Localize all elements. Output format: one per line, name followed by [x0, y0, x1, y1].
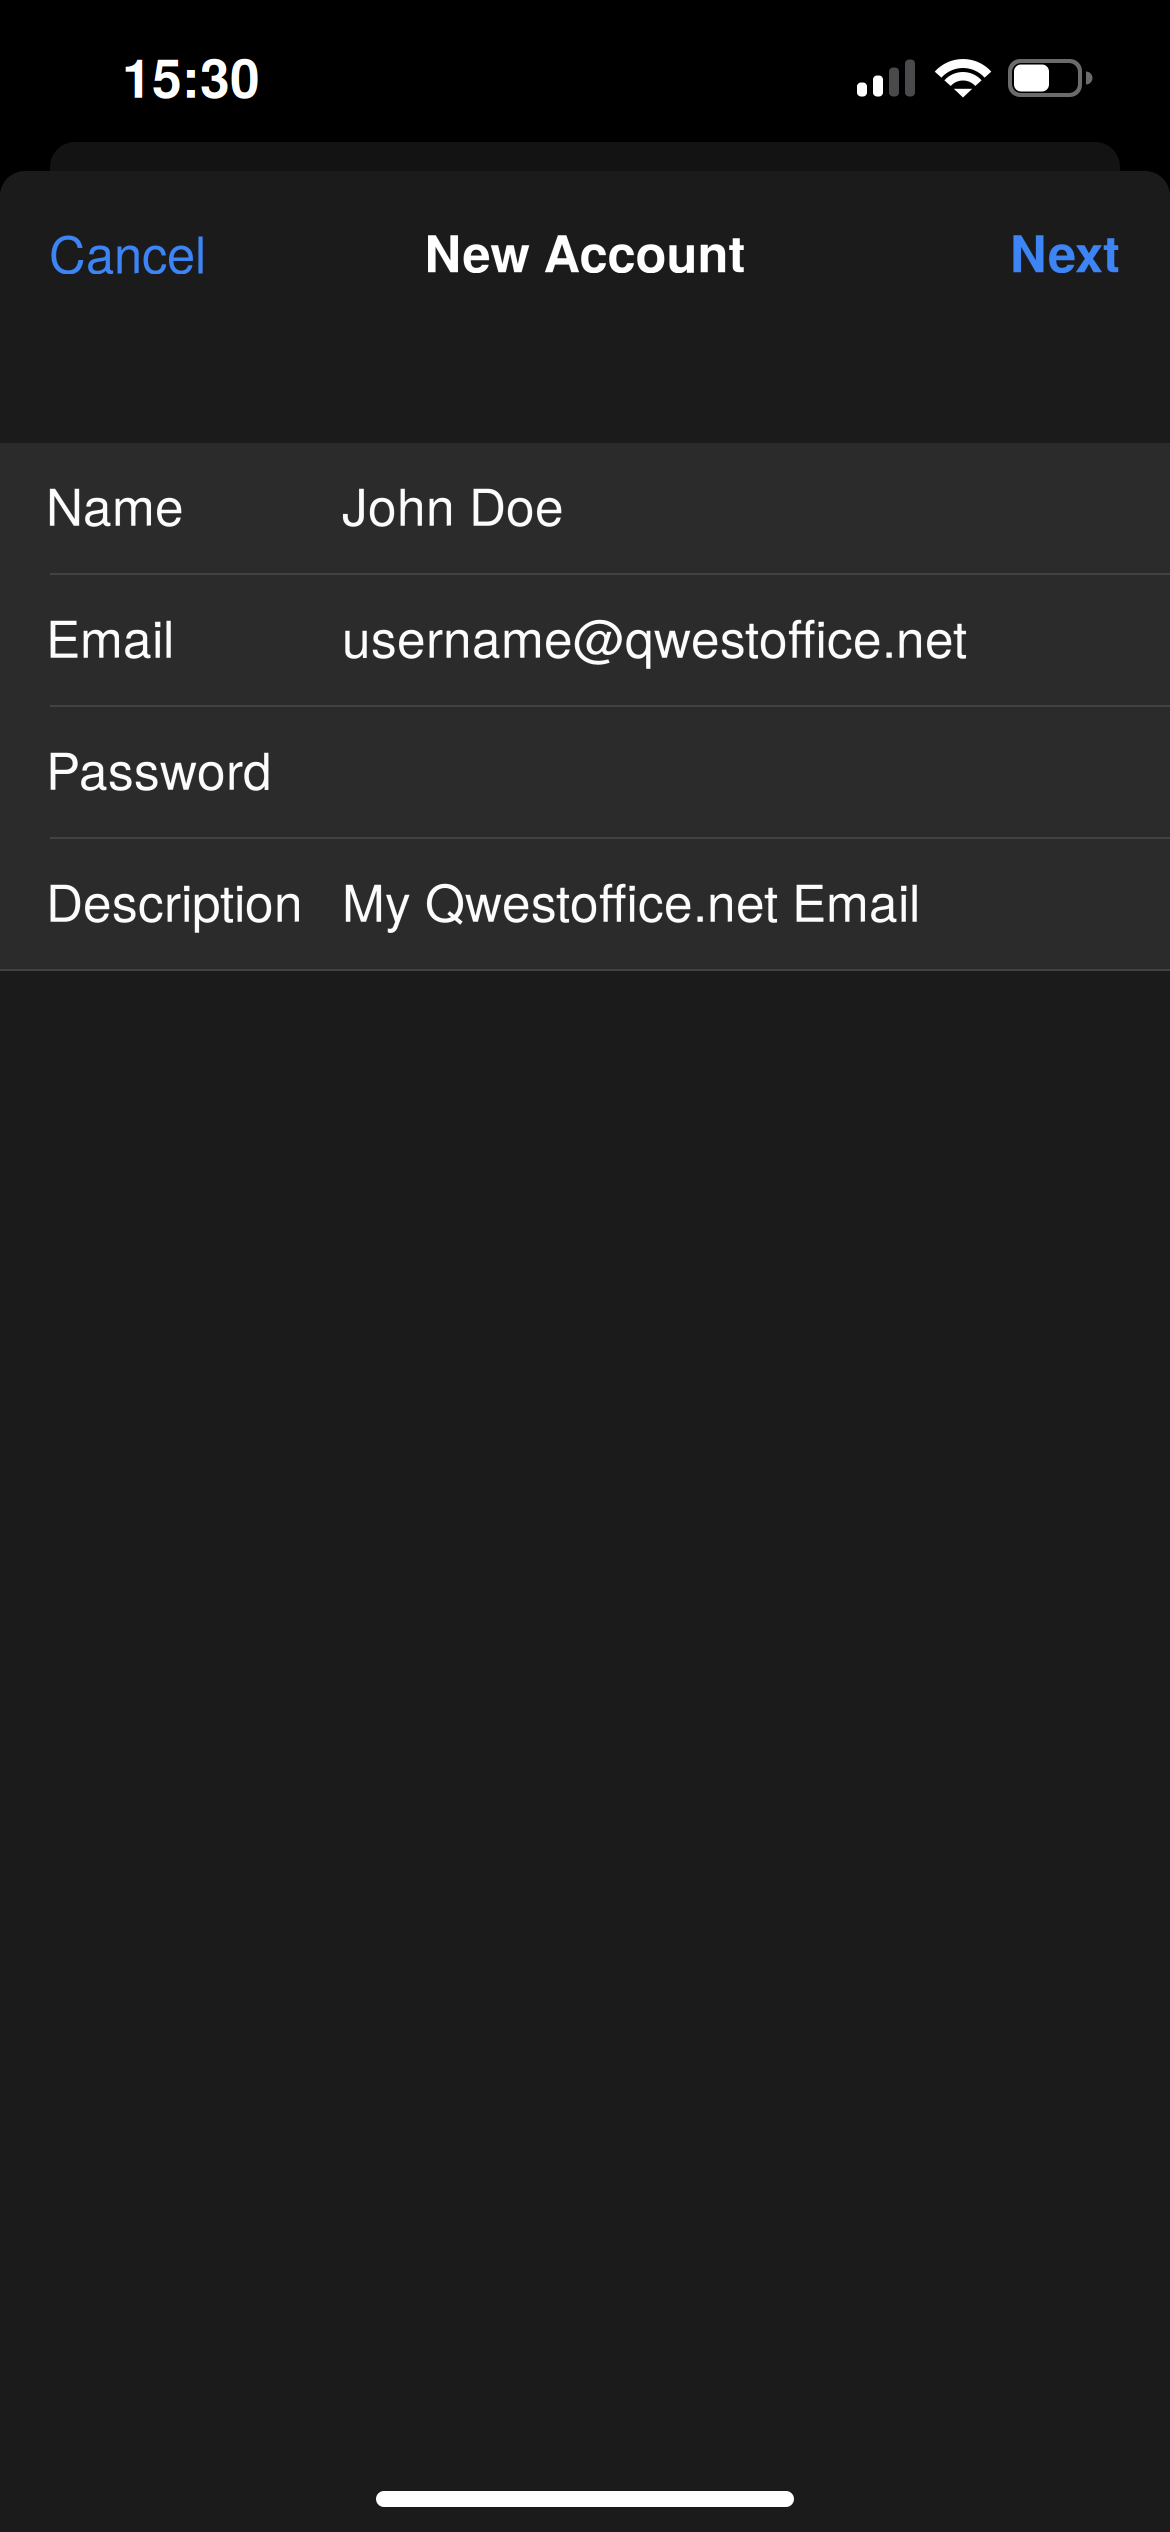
button[interactable]: Email — [0, 575, 1170, 705]
staticText: John Doe — [342, 467, 564, 540]
button[interactable]: Cancel — [49, 195, 242, 307]
staticText: Password — [46, 731, 272, 804]
staticText: My Qwestoffice.net Email — [342, 863, 920, 936]
button[interactable]: Description — [0, 839, 1170, 969]
staticText: Name — [46, 467, 184, 540]
staticText: Cancel — [49, 215, 206, 288]
button[interactable]: Next — [974, 195, 1120, 307]
button[interactable]: Password — [0, 707, 1170, 837]
staticText: Email — [46, 599, 174, 672]
staticText: 15:30 — [122, 38, 260, 114]
staticText: Description — [46, 863, 303, 936]
staticText: username@qwestoffice.net — [342, 599, 967, 672]
staticText: Next — [1010, 215, 1120, 288]
staticText: New Account — [424, 215, 745, 288]
button[interactable]: Name — [0, 443, 1170, 573]
